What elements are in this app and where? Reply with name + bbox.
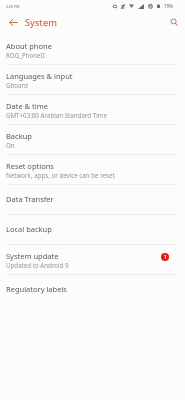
staticText: Languages & input: [6, 71, 73, 81]
staticText: 1: [164, 254, 167, 261]
staticText: Local backup: [6, 224, 52, 234]
button[interactable]: Data Transfer: [0, 185, 185, 214]
staticText: 79%: [164, 3, 174, 9]
staticText: Regulatory labels: [6, 284, 67, 294]
button[interactable]: About phone: [0, 35, 185, 64]
button[interactable]: Date & time: [0, 95, 185, 124]
staticText: System update: [6, 251, 59, 261]
button[interactable]: Reset options: [0, 155, 185, 184]
staticText: System: [25, 16, 57, 29]
button[interactable]: Backup: [0, 125, 185, 154]
staticText: 6:20 PM: [6, 4, 20, 9]
staticText: Updated to Android 9: [6, 261, 69, 269]
staticText: On: [6, 141, 15, 149]
button[interactable]: Back: [2, 11, 24, 34]
button[interactable]: Languages & input: [0, 65, 185, 94]
button[interactable]: Search: [166, 14, 183, 31]
button[interactable]: System update: [0, 245, 185, 274]
staticText: Date & time: [6, 101, 48, 111]
staticText: Gboard: [6, 81, 28, 89]
staticText: Network, apps, or device can be reset: [6, 171, 115, 179]
staticText: Reset options: [6, 161, 54, 171]
button[interactable]: Local backup: [0, 215, 185, 244]
staticText: Data Transfer: [6, 194, 54, 204]
staticText: ROG_PhoneII: [6, 51, 45, 59]
button[interactable]: Regulatory labels: [0, 275, 185, 304]
staticText: About phone: [6, 41, 52, 51]
staticText: Backup: [6, 131, 32, 141]
staticText: GMT+03:00 Arabian Standard Time: [6, 111, 108, 119]
